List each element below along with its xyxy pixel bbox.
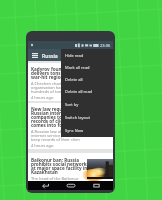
button[interactable]: Delete all bbox=[61, 73, 113, 85]
button[interactable]: Hide read bbox=[61, 49, 113, 61]
button[interactable]: Baikonur ban: Russia prohibits social ne… bbox=[28, 153, 113, 181]
staticText: Mark all read bbox=[65, 65, 90, 70]
staticText: 23:06 bbox=[100, 43, 111, 48]
button[interactable]: Home bbox=[63, 181, 79, 190]
staticText: Switch layout bbox=[65, 115, 90, 120]
staticText: 4 hours ago bbox=[31, 95, 54, 100]
button[interactable]: Recent apps bbox=[88, 181, 104, 190]
staticText: Kadyrov foundation delivers tons of aid … bbox=[31, 66, 81, 80]
button[interactable]: Kadyrov foundation delivers tons of aid … bbox=[28, 63, 113, 101]
button[interactable]: Back bbox=[37, 181, 53, 190]
staticText: Sort by bbox=[65, 102, 79, 107]
button[interactable]: Switch layout bbox=[61, 111, 113, 124]
button[interactable]: Open navigation drawer bbox=[28, 49, 42, 61]
staticText: New law requiring Russian internet compa… bbox=[31, 106, 84, 128]
button[interactable]: New law requiring Russian internet compa… bbox=[28, 103, 113, 149]
staticText: Delete all bbox=[65, 77, 83, 82]
staticText: Delete all read bbox=[65, 89, 93, 94]
staticText: A Chechen charitable orga organisation h… bbox=[31, 81, 81, 94]
staticText: A Russian law obliging internet service … bbox=[31, 129, 80, 142]
staticText: Baikonur ban: Russia prohibits social ne… bbox=[31, 157, 89, 175]
staticText: Sync Now bbox=[65, 128, 84, 133]
staticText: 4 hours ago bbox=[31, 143, 54, 148]
staticText: Hide read bbox=[65, 53, 84, 58]
button[interactable]: Delete all read bbox=[61, 85, 113, 98]
button[interactable]: Sort by bbox=[61, 98, 113, 111]
button[interactable]: Mark all read bbox=[61, 61, 113, 73]
staticText: Russia bbox=[42, 52, 58, 59]
staticText: The head of the Baikonur bbox=[31, 176, 79, 181]
button[interactable]: Sync Now bbox=[61, 124, 113, 137]
